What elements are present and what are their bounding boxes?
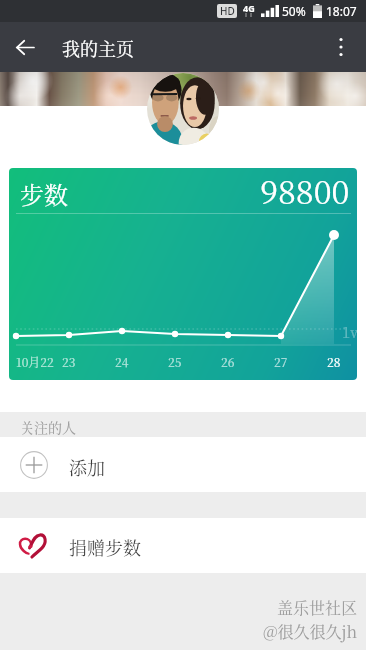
button[interactable]: 捐赠步数 (0, 518, 366, 573)
staticText: 关注的人 (20, 417, 76, 437)
staticText: 23 (62, 353, 76, 370)
staticText: 50% (282, 3, 306, 19)
staticText: 步数 (20, 176, 68, 210)
staticText: 27 (274, 353, 288, 370)
staticText: 捐赠步数 (69, 534, 141, 560)
button[interactable]: Profile photo (147, 73, 219, 145)
staticText: 18:07 (326, 3, 357, 19)
staticText: 26 (221, 353, 235, 370)
button[interactable]: More options (318, 24, 364, 70)
button[interactable]: 添加 (0, 437, 366, 492)
staticText: 10月22 (16, 353, 54, 370)
staticText: HD (220, 4, 235, 18)
staticText: 28 (327, 353, 341, 370)
staticText: 24 (115, 353, 129, 370)
staticText: 98800 (260, 168, 350, 213)
button[interactable]: 步数 (9, 168, 357, 380)
staticText: 添加 (69, 454, 105, 480)
staticText: @很久很久jh (263, 620, 358, 643)
staticText: 4G (243, 2, 255, 14)
staticText: 1w (342, 321, 357, 343)
staticText: 25 (168, 353, 182, 370)
staticText: 盖乐世社区 (277, 596, 358, 619)
button[interactable]: Back (2, 24, 48, 70)
staticText: 我的主页 (62, 35, 134, 61)
